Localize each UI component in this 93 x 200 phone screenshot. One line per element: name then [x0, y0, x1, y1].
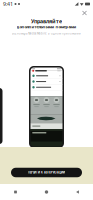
staticText: 9:41 — [3, 0, 13, 8]
button[interactable]: ПЕРЕЙТИ К АВТОРИЗАЦИИ — [11, 168, 82, 177]
staticText: ПЕРЕЙТИ К АВТОРИЗАЦИИ — [28, 171, 65, 174]
button[interactable]: Home — [31, 184, 62, 200]
staticText: Управляйте — [31, 18, 62, 25]
staticText: дополнительными номерами — [16, 24, 76, 29]
button[interactable]: Recent apps — [0, 184, 31, 200]
button[interactable]: Close — [79, 8, 90, 18]
staticText: Все номера Yandex Mobile в одном приложе… — [12, 32, 81, 35]
button[interactable]: Back — [62, 184, 93, 200]
